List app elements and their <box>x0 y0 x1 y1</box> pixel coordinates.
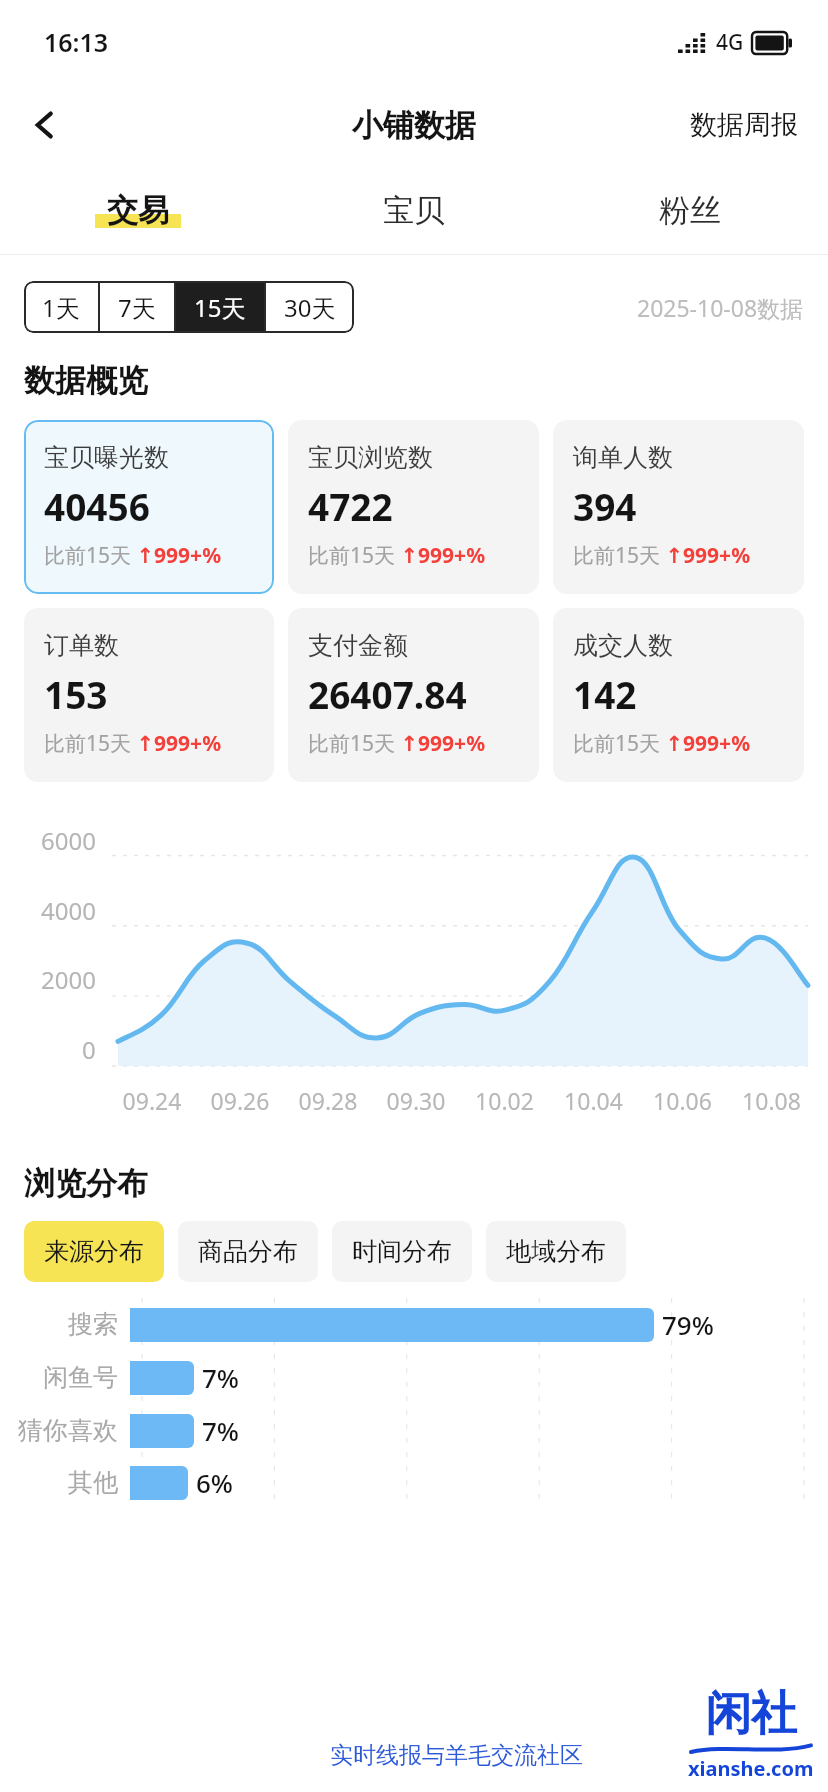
staticText: 4000 <box>41 894 96 927</box>
staticText: 小铺数据 <box>352 106 476 145</box>
staticText: 搜索 <box>0 1309 118 1340</box>
button[interactable]: 粉丝 <box>552 166 828 254</box>
staticText: 比前15天 ↑999+% <box>573 541 751 570</box>
staticText: 142 <box>573 669 637 719</box>
staticText: 6% <box>196 1465 234 1500</box>
staticText: 粉丝 <box>659 191 721 230</box>
staticText: 商品分布 <box>198 1236 298 1267</box>
staticText: 其他 <box>0 1467 118 1498</box>
staticText: 09.26 <box>196 1085 284 1116</box>
staticText: 猜你喜欢 <box>0 1415 118 1446</box>
button[interactable]: 询单人数 <box>553 420 804 594</box>
staticText: 10.02 <box>460 1085 549 1116</box>
staticText: 闲鱼号 <box>0 1362 118 1393</box>
staticText: 宝贝浏览数 <box>308 442 433 473</box>
button[interactable]: 商品分布 <box>178 1221 318 1282</box>
button[interactable]: 数据周报 <box>674 98 814 152</box>
staticText: 支付金额 <box>308 630 408 661</box>
staticText: 比前15天 ↑999+% <box>308 541 486 570</box>
staticText: 宝贝曝光数 <box>44 442 169 473</box>
staticText: 比前15天 ↑999+% <box>573 729 751 758</box>
button[interactable]: 15天 <box>176 281 264 333</box>
button[interactable]: 订单数 <box>24 608 274 782</box>
staticText: 79% <box>662 1307 714 1342</box>
staticText: 7天 <box>118 291 156 324</box>
staticText: 09.30 <box>372 1085 460 1116</box>
staticText: 40456 <box>44 481 150 531</box>
staticText: 15天 <box>194 291 246 324</box>
staticText: 10.06 <box>638 1085 727 1116</box>
button[interactable]: 30天 <box>266 281 354 333</box>
button[interactable]: 宝贝 <box>276 166 552 254</box>
staticText: 394 <box>573 481 637 531</box>
staticText: 10.08 <box>727 1085 816 1116</box>
staticText: 比前15天 ↑999+% <box>308 729 486 758</box>
staticText: 时间分布 <box>352 1236 452 1267</box>
staticText: 10.04 <box>549 1085 638 1116</box>
staticText: 6000 <box>41 824 96 857</box>
button[interactable]: 成交人数 <box>553 608 804 782</box>
staticText: 闲社 <box>705 1685 797 1743</box>
button[interactable]: 宝贝浏览数 <box>288 420 539 594</box>
staticText: 来源分布 <box>44 1236 144 1267</box>
staticText: 16:13 <box>44 25 109 59</box>
staticText: 2000 <box>41 963 96 996</box>
staticText: 30天 <box>284 291 336 324</box>
button[interactable]: 交易 <box>0 166 276 254</box>
staticText: 比前15天 ↑999+% <box>44 541 222 570</box>
staticText: 宝贝 <box>383 191 445 230</box>
staticText: 09.24 <box>108 1085 196 1116</box>
staticText: 询单人数 <box>573 442 673 473</box>
staticText: 2025-10-08数据 <box>637 292 804 323</box>
button[interactable]: 宝贝曝光数 <box>24 420 274 594</box>
staticText: 订单数 <box>44 630 119 661</box>
staticText: 26407.84 <box>308 669 467 719</box>
button[interactable]: 时间分布 <box>332 1221 472 1282</box>
staticText: 153 <box>44 669 108 719</box>
button[interactable]: 支付金额 <box>288 608 539 782</box>
staticText: 交易 <box>107 191 169 230</box>
button[interactable]: 来源分布 <box>24 1221 164 1282</box>
staticText: 1天 <box>42 291 80 324</box>
button[interactable]: 地域分布 <box>486 1221 626 1282</box>
staticText: 地域分布 <box>506 1236 606 1267</box>
staticText: 浏览分布 <box>24 1164 148 1203</box>
staticText: 实时线报与羊毛交流社区 <box>330 1741 583 1770</box>
button[interactable]: 7天 <box>100 281 174 333</box>
staticText: 比前15天 ↑999+% <box>44 729 222 758</box>
staticText: 数据概览 <box>24 361 148 400</box>
staticText: 7% <box>202 1413 240 1448</box>
staticText: 0 <box>82 1033 96 1066</box>
staticText: 4722 <box>308 481 393 531</box>
staticText: 数据周报 <box>690 108 798 142</box>
staticText: 4G <box>716 28 744 57</box>
staticText: xianshe.com <box>688 1755 814 1782</box>
button[interactable]: Back <box>14 94 76 156</box>
staticText: 7% <box>202 1360 240 1395</box>
button[interactable]: 1天 <box>24 281 98 333</box>
staticText: 成交人数 <box>573 630 673 661</box>
staticText: 09.28 <box>284 1085 372 1116</box>
